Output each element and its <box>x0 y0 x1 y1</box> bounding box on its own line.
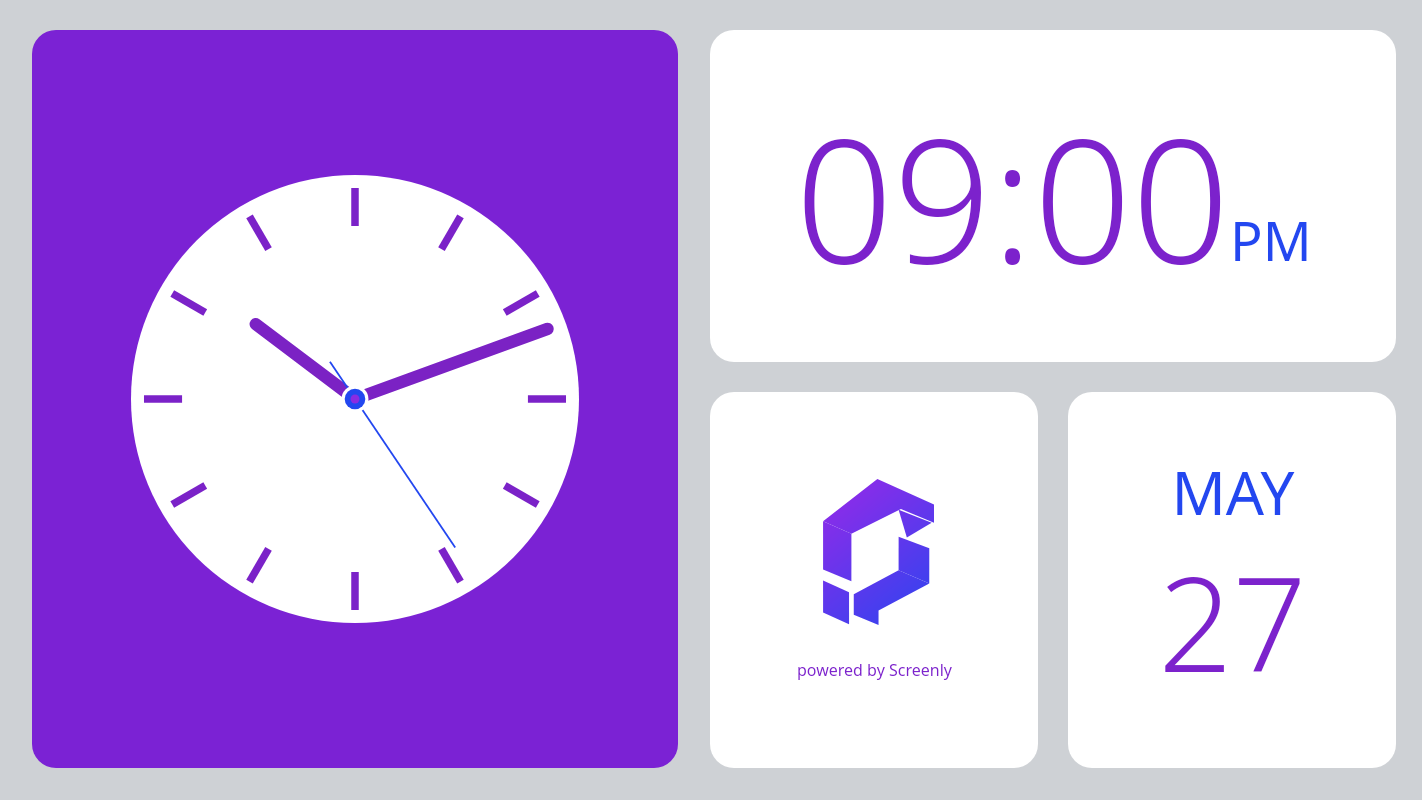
staticText: MAY <box>1171 451 1295 533</box>
staticText: powered by Screenly <box>797 659 952 681</box>
button[interactable]: Screenly logo <box>710 392 1038 768</box>
staticText: PM <box>1230 203 1312 277</box>
staticText: 09:00 <box>795 79 1230 313</box>
button[interactable]: MAY <box>1068 392 1396 768</box>
button[interactable]: 09:00 <box>710 30 1396 362</box>
button[interactable]: Analog clock <box>32 30 678 768</box>
staticText: 27 <box>1158 533 1307 710</box>
